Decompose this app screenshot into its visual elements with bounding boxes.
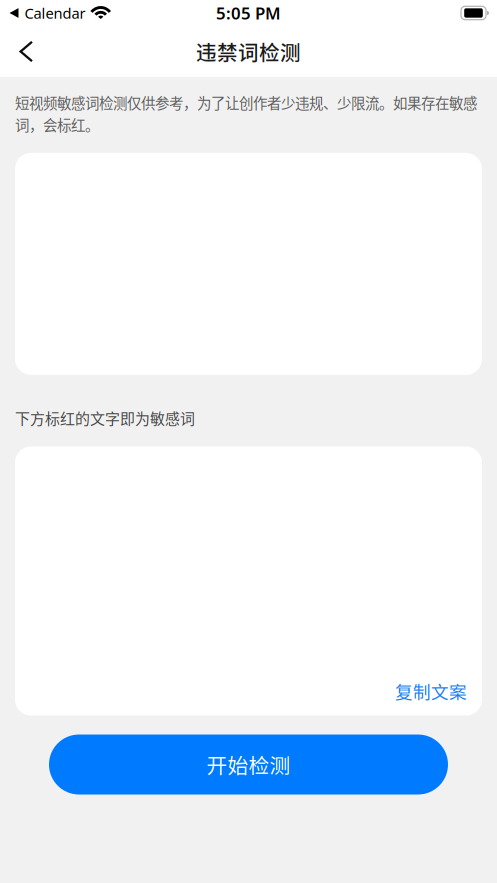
staticText: 开始检测 [206,750,290,779]
staticText: 下方标红的文字即为敏感词 [15,407,195,428]
staticText: 违禁词检测 [196,37,301,66]
button[interactable]: 开始检测 [49,734,448,794]
staticText: 5:05 PM [216,2,281,24]
staticText: 短视频敏感词检测仅供参考，为了让创作者少违规、少限流。如果存在敏感词，会标红。 [15,92,477,135]
staticText: Calendar [24,3,85,23]
button[interactable]: Result text [15,446,482,715]
button[interactable]: 复制文案 [395,678,482,715]
button[interactable]: Back [0,26,53,77]
staticText: 复制文案 [395,678,467,703]
